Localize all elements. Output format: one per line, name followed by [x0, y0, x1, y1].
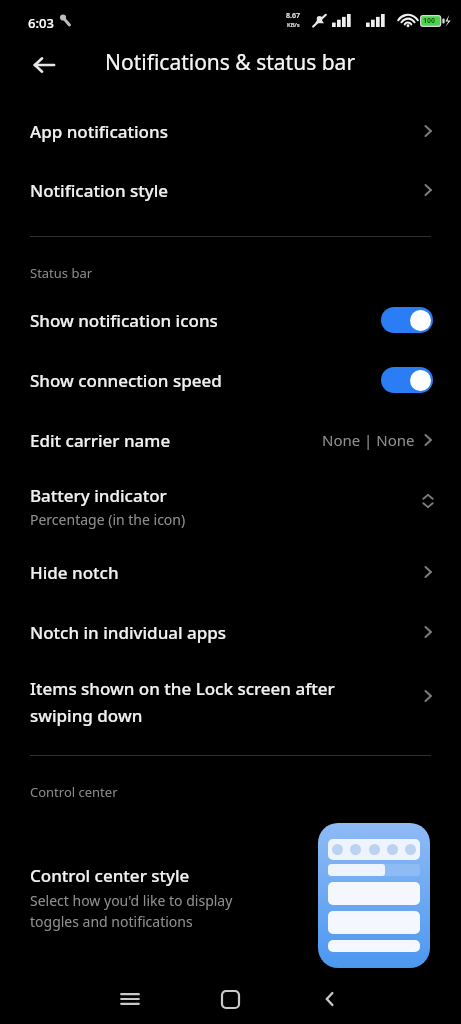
staticText: Control center style [30, 864, 190, 887]
staticText: KB/s [287, 21, 300, 29]
staticText: Show notification icons [30, 309, 218, 332]
staticText: Edit carrier name [30, 429, 171, 452]
staticText: Items shown on the Lock screen after [30, 677, 335, 700]
staticText: App notifications [30, 120, 168, 143]
staticText: Percentage (in the icon) [30, 510, 186, 529]
staticText: Notification style [30, 179, 169, 202]
button[interactable]: Hide notch [0, 544, 461, 600]
staticText: Status bar [30, 264, 93, 282]
staticText: Hide notch [30, 561, 119, 584]
staticText: 8.67 [286, 11, 300, 21]
button[interactable]: Control center style [0, 820, 461, 970]
staticText: swiping down [30, 704, 143, 727]
staticText: Notifications & status bar [105, 48, 356, 77]
button[interactable]: App notifications [0, 103, 461, 159]
staticText: Notch in individual apps [30, 621, 227, 644]
button[interactable]: Home [208, 977, 252, 1021]
staticText: None | None [322, 430, 415, 450]
button[interactable]: Notification style [0, 162, 461, 218]
staticText: Select how you'd like to display [30, 891, 233, 910]
button[interactable]: Recents [108, 977, 152, 1021]
staticText: 100 [423, 16, 436, 26]
button[interactable]: Show notification icons [0, 292, 461, 348]
button[interactable]: Edit carrier name [0, 412, 461, 468]
button[interactable]: Back [308, 977, 352, 1021]
staticText: Show connection speed [30, 369, 222, 392]
staticText: Battery indicator [30, 484, 167, 507]
button[interactable]: Items shown on the Lock screen after [0, 663, 461, 727]
staticText: 6:03 [28, 14, 54, 32]
staticText: toggles and notifications [30, 912, 193, 931]
button[interactable]: Battery indicator [0, 470, 461, 534]
button[interactable]: Back [22, 43, 66, 87]
button[interactable]: Notch in individual apps [0, 604, 461, 660]
staticText: Control center [30, 783, 118, 801]
button[interactable]: Show connection speed [0, 352, 461, 408]
